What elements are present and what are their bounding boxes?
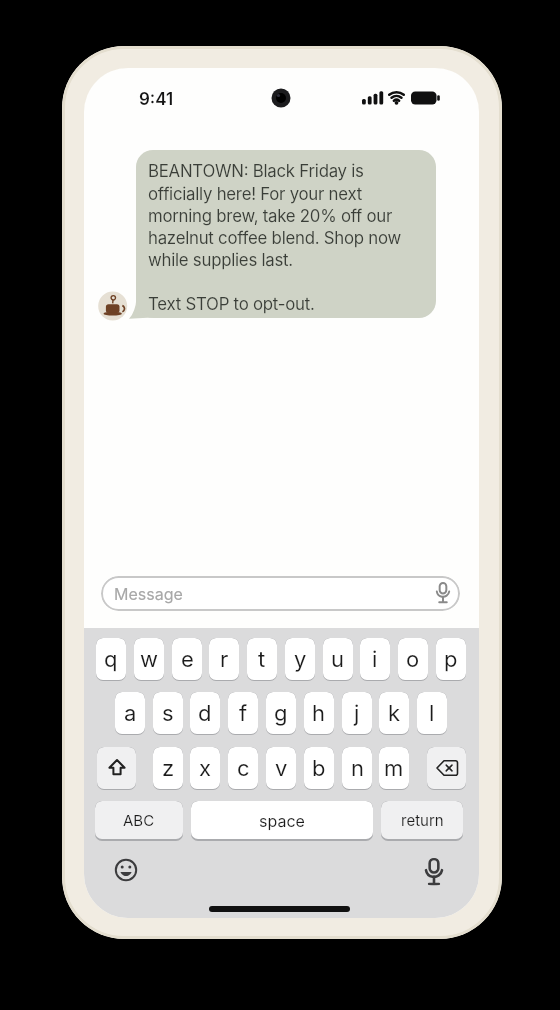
button[interactable]: return bbox=[381, 801, 463, 841]
staticText: p bbox=[444, 646, 458, 673]
staticText: z bbox=[162, 755, 175, 782]
button[interactable]: a bbox=[115, 692, 145, 735]
button[interactable]: l bbox=[417, 692, 447, 735]
staticText: b bbox=[312, 755, 326, 782]
staticText: i bbox=[372, 646, 378, 673]
staticText: o bbox=[406, 646, 420, 673]
button[interactable]: y bbox=[285, 638, 315, 681]
button[interactable]: s bbox=[153, 692, 183, 735]
button[interactable]: d bbox=[190, 692, 220, 735]
staticText: n bbox=[351, 755, 364, 782]
button[interactable]: i bbox=[360, 638, 390, 681]
button[interactable]: e bbox=[172, 638, 202, 681]
staticText: j bbox=[354, 700, 360, 727]
button[interactable]: ABC bbox=[95, 801, 183, 841]
button[interactable] bbox=[420, 858, 448, 886]
staticText: Message bbox=[114, 584, 183, 603]
button[interactable]: o bbox=[398, 638, 428, 681]
button[interactable] bbox=[97, 747, 136, 790]
button[interactable]: v bbox=[266, 747, 296, 790]
staticText: BEANTOWN: Black Friday is officially her… bbox=[148, 161, 401, 314]
staticText: f bbox=[239, 700, 248, 727]
button[interactable]: g bbox=[266, 692, 296, 735]
button[interactable]: x bbox=[190, 747, 220, 790]
button[interactable]: f bbox=[228, 692, 258, 735]
button[interactable]: z bbox=[153, 747, 183, 790]
button[interactable]: j bbox=[342, 692, 372, 735]
button[interactable]: t bbox=[247, 638, 277, 681]
button[interactable]: b bbox=[304, 747, 334, 790]
staticText: d bbox=[198, 700, 212, 727]
staticText: y bbox=[294, 646, 307, 673]
staticText: k bbox=[388, 700, 401, 727]
button[interactable]: r bbox=[209, 638, 239, 681]
staticText: h bbox=[312, 700, 326, 727]
button[interactable]: c bbox=[228, 747, 258, 790]
staticText: e bbox=[181, 646, 194, 673]
staticText: q bbox=[104, 646, 118, 673]
staticText: v bbox=[275, 755, 288, 782]
button[interactable]: u bbox=[323, 638, 353, 681]
button[interactable] bbox=[112, 856, 140, 884]
staticText: w bbox=[140, 646, 159, 673]
staticText: g bbox=[274, 700, 288, 727]
button[interactable]: n bbox=[342, 747, 372, 790]
button[interactable] bbox=[427, 747, 466, 790]
staticText: x bbox=[199, 755, 212, 782]
button[interactable]: k bbox=[379, 692, 409, 735]
staticText: return bbox=[401, 811, 444, 829]
staticText: ABC bbox=[123, 811, 155, 829]
button[interactable]: Message bbox=[101, 576, 460, 611]
button[interactable]: m bbox=[379, 747, 409, 790]
button[interactable]: w bbox=[134, 638, 164, 681]
button[interactable]: p bbox=[436, 638, 466, 681]
staticText: m bbox=[384, 755, 404, 782]
button[interactable]: space bbox=[191, 801, 373, 841]
staticText: t bbox=[258, 646, 266, 673]
staticText: 9:41 bbox=[139, 89, 174, 110]
staticText: l bbox=[429, 700, 435, 727]
button[interactable]: h bbox=[304, 692, 334, 735]
staticText: u bbox=[331, 646, 345, 673]
button[interactable]: q bbox=[96, 638, 126, 681]
staticText: c bbox=[237, 755, 250, 782]
staticText: s bbox=[162, 700, 174, 727]
staticText: space bbox=[259, 811, 305, 830]
staticText: r bbox=[220, 646, 229, 673]
staticText: a bbox=[124, 700, 137, 727]
